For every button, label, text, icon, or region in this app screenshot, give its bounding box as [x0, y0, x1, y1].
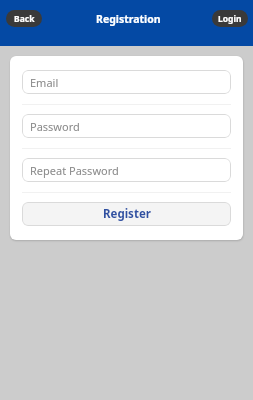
- staticText: Repeat Password: [30, 163, 119, 178]
- staticText: Registration: [96, 12, 161, 26]
- staticText: Login: [218, 13, 242, 25]
- button[interactable]: Repeat Password: [22, 158, 231, 182]
- button[interactable]: Login: [212, 10, 248, 27]
- button[interactable]: Back: [6, 10, 42, 27]
- button[interactable]: Password: [22, 114, 231, 138]
- button[interactable]: Register: [22, 202, 231, 226]
- staticText: Email: [30, 75, 59, 90]
- staticText: Back: [14, 13, 35, 25]
- staticText: Register: [103, 206, 151, 222]
- staticText: Password: [30, 119, 80, 134]
- button[interactable]: Email: [22, 70, 231, 94]
